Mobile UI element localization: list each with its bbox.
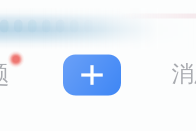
- button[interactable]: Topics: [0, 45, 44, 105]
- button[interactable]: Messages: [164, 45, 196, 105]
- button[interactable]: Compose: [63, 54, 121, 95]
- staticText: 消息: [171, 60, 196, 88]
- staticText: 题: [0, 60, 9, 90]
